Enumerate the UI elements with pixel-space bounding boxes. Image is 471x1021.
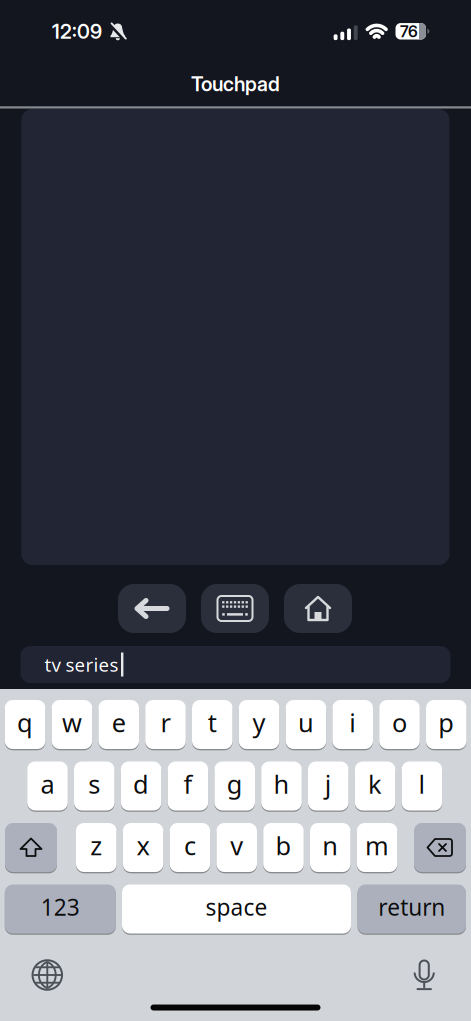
button[interactable]: s: [74, 761, 115, 810]
button[interactable]: Next keyboard: [32, 960, 62, 990]
button[interactable]: x: [123, 823, 163, 872]
staticText: j: [325, 767, 332, 801]
button[interactable]: return: [357, 884, 466, 933]
staticText: z: [90, 829, 102, 862]
button[interactable]: v: [216, 823, 257, 872]
staticText: s: [88, 767, 100, 801]
staticText: q: [17, 706, 33, 739]
button[interactable]: d: [121, 761, 161, 810]
button[interactable]: t: [192, 700, 233, 749]
button[interactable]: n: [310, 823, 351, 872]
button[interactable]: Delete: [414, 823, 466, 872]
button[interactable]: g: [214, 761, 255, 810]
staticText: l: [418, 767, 425, 801]
button[interactable]: c: [170, 823, 210, 872]
staticText: 123: [41, 892, 80, 922]
staticText: 12:09: [52, 19, 102, 44]
button[interactable]: u: [286, 700, 326, 749]
button[interactable]: r: [145, 700, 186, 749]
staticText: e: [112, 706, 126, 739]
button[interactable]: a: [27, 761, 68, 810]
staticText: f: [183, 767, 192, 801]
button[interactable]: f: [168, 761, 208, 810]
button[interactable]: b: [263, 823, 304, 872]
button[interactable]: p: [426, 700, 467, 749]
button[interactable]: j: [308, 761, 349, 810]
button[interactable]: z: [76, 823, 117, 872]
staticText: a: [40, 767, 54, 801]
button[interactable]: e: [98, 700, 139, 749]
staticText: d: [133, 767, 149, 801]
button[interactable]: 123: [5, 884, 116, 933]
staticText: w: [62, 706, 82, 739]
staticText: m: [365, 829, 389, 862]
button[interactable]: y: [239, 700, 279, 749]
staticText: tv series: [44, 652, 118, 677]
staticText: y: [253, 706, 266, 739]
staticText: i: [349, 706, 356, 739]
staticText: t: [208, 706, 217, 739]
button[interactable]: Shift: [5, 823, 57, 872]
button[interactable]: Back: [118, 584, 186, 633]
button[interactable]: k: [355, 761, 395, 810]
staticText: space: [205, 892, 267, 922]
staticText: r: [160, 706, 170, 739]
button[interactable]: m: [357, 823, 397, 872]
staticText: Touchpad: [191, 72, 280, 96]
staticText: v: [230, 829, 243, 862]
button[interactable]: Dictation: [414, 960, 434, 990]
staticText: return: [378, 892, 445, 922]
staticText: h: [273, 767, 289, 801]
button[interactable]: l: [402, 761, 442, 810]
staticText: 76: [400, 22, 418, 41]
button[interactable]: i: [332, 700, 373, 749]
button[interactable]: h: [261, 761, 302, 810]
button[interactable]: Keyboard: [201, 584, 269, 633]
staticText: x: [137, 829, 150, 862]
button[interactable]: Text input: tv series: [20, 646, 450, 683]
staticText: b: [275, 829, 291, 862]
button[interactable]: q: [5, 700, 45, 749]
staticText: p: [438, 706, 454, 739]
button[interactable]: w: [52, 700, 92, 749]
staticText: u: [298, 706, 314, 739]
staticText: o: [392, 706, 407, 739]
staticText: c: [184, 829, 196, 862]
staticText: g: [227, 767, 243, 801]
button[interactable]: Home: [284, 584, 352, 633]
button[interactable]: space: [122, 884, 351, 933]
button[interactable]: o: [379, 700, 420, 749]
staticText: k: [368, 767, 382, 801]
staticText: n: [322, 829, 338, 862]
